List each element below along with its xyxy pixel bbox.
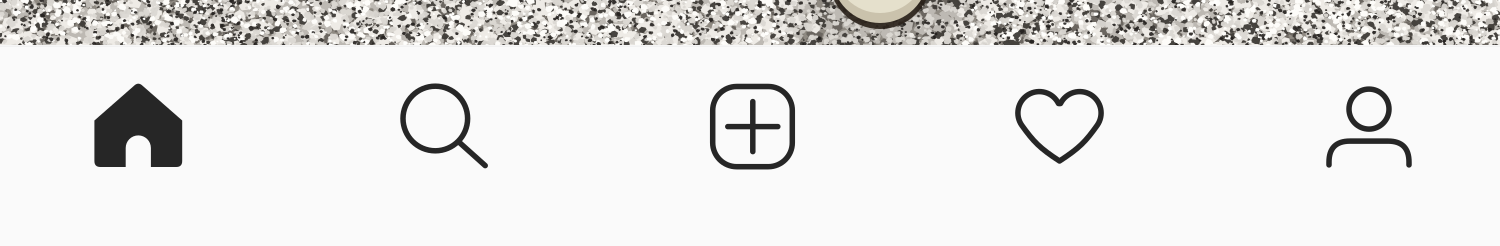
button[interactable]: Search: [300, 46, 600, 246]
button[interactable]: Profile: [1200, 46, 1500, 246]
button[interactable]: Home: [0, 46, 300, 246]
button[interactable]: New post: [600, 46, 900, 246]
button[interactable]: Activity: [900, 46, 1200, 246]
